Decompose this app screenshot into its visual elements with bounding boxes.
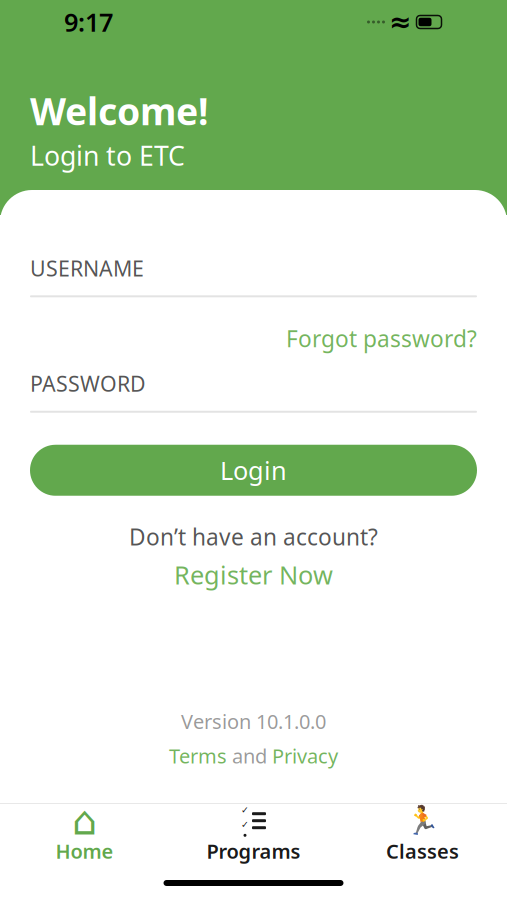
button[interactable]: ✓: [169, 800, 338, 870]
staticText: and: [227, 742, 272, 769]
staticText: Classes: [386, 838, 459, 864]
staticText: ✓: [241, 819, 249, 830]
staticText: 🏃: [405, 805, 440, 837]
button[interactable]: Register Now: [30, 558, 477, 591]
staticText: Login to ETC: [30, 138, 185, 173]
staticText: USERNAME: [30, 254, 144, 282]
staticText: Privacy: [272, 742, 338, 769]
staticText: Login: [220, 453, 287, 487]
staticText: PASSWORD: [30, 369, 146, 398]
button[interactable]: 🏃: [338, 800, 507, 870]
button[interactable]: ⌂: [0, 800, 169, 870]
staticText: ✓: [241, 805, 249, 815]
button[interactable]: Privacy: [272, 742, 338, 769]
staticText: Register Now: [174, 558, 333, 591]
staticText: ≈: [389, 7, 411, 37]
staticText: 9:17: [64, 5, 113, 39]
staticText: Terms: [169, 742, 227, 769]
staticText: Don’t have an account?: [129, 522, 378, 552]
button[interactable]: Login: [30, 445, 477, 496]
button[interactable]: Terms: [169, 742, 227, 769]
staticText: Home: [55, 838, 113, 864]
staticText: Forgot password?: [286, 323, 477, 353]
staticText: ⌂: [72, 798, 97, 843]
staticText: Version 10.1.0.0: [181, 708, 326, 734]
button[interactable]: Forgot password?: [286, 323, 477, 353]
staticText: Welcome!: [30, 86, 209, 136]
staticText: Programs: [206, 838, 300, 864]
